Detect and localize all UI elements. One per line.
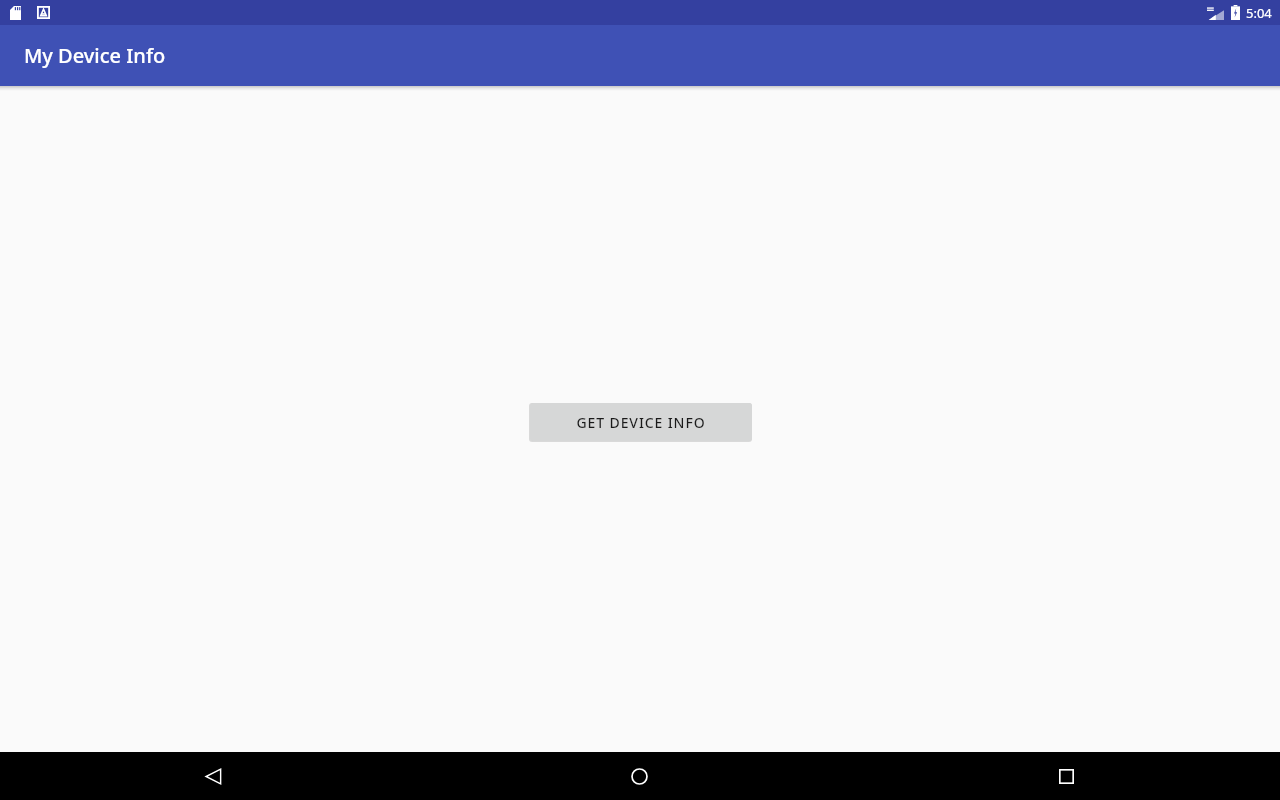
staticText: My Device Info	[24, 42, 166, 69]
button[interactable]: Recent apps	[853, 752, 1280, 800]
staticText: 5:04	[1246, 4, 1272, 22]
staticText: GET DEVICE INFO	[576, 413, 706, 432]
button[interactable]: Back	[0, 752, 426, 800]
button[interactable]: Home	[426, 752, 853, 800]
button[interactable]: GET DEVICE INFO	[530, 403, 752, 441]
